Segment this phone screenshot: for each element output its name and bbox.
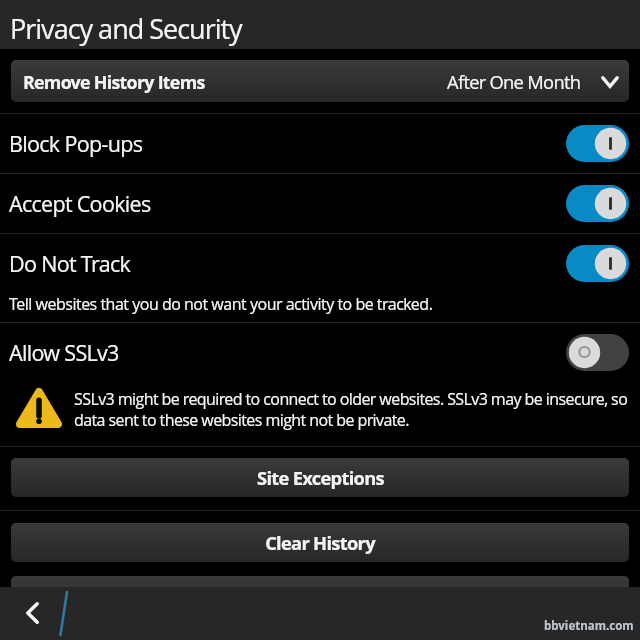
staticText: After One Month: [447, 69, 581, 94]
button[interactable]: Do Not Track: [0, 234, 640, 322]
staticText: Do Not Track: [9, 249, 131, 278]
button[interactable]: Block Pop-ups: [0, 114, 640, 173]
button[interactable]: Back: [12, 593, 52, 633]
staticText: Allow SSLv3: [9, 338, 119, 367]
button[interactable]: Clear Cookies: [11, 576, 629, 615]
staticText: SSLv3 might be required to connect to ol…: [74, 388, 640, 431]
staticText: Clear History: [265, 530, 375, 555]
staticText: Tell websites that you do not want your …: [9, 293, 433, 315]
button[interactable]: Clear History: [11, 523, 629, 562]
button[interactable]: Accept Cookies: [0, 174, 640, 233]
staticText: Site Exceptions: [257, 465, 384, 490]
staticText: bbvietnam.com: [544, 618, 634, 634]
button[interactable]: Remove History Items: [11, 60, 629, 102]
staticText: Block Pop-ups: [9, 129, 143, 158]
staticText: Remove History Items: [23, 70, 205, 94]
staticText: Accept Cookies: [9, 189, 151, 218]
staticText: Privacy and Security: [10, 10, 242, 47]
staticText: Clear Cookies: [263, 583, 378, 608]
button[interactable]: Site Exceptions: [11, 458, 629, 497]
button[interactable]: Allow SSLv3: [0, 323, 640, 382]
